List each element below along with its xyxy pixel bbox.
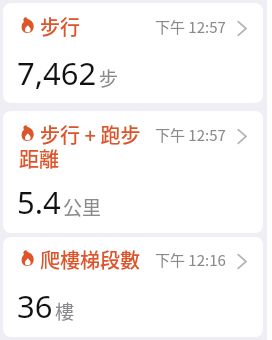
staticText: 步行 [40,12,80,41]
staticText: 下午 12:57 [155,124,226,146]
staticText: 5.4 [17,181,61,223]
staticText: 36 [17,285,53,327]
button[interactable]: 步行 [3,3,263,103]
staticText: 距離 [19,144,59,173]
button[interactable]: 步行 + 跑步 [3,111,263,233]
staticText: 公里 [63,193,102,221]
staticText: 樓 [55,297,75,325]
staticText: 下午 12:57 [155,16,226,38]
staticText: 步 [99,64,119,92]
staticText: 7,462 [17,52,97,94]
staticText: 步行 + 跑步 [40,120,141,149]
staticText: 下午 12:16 [155,249,226,271]
button[interactable]: 爬樓梯段數 [3,237,263,337]
staticText: 爬樓梯段數 [40,245,140,274]
